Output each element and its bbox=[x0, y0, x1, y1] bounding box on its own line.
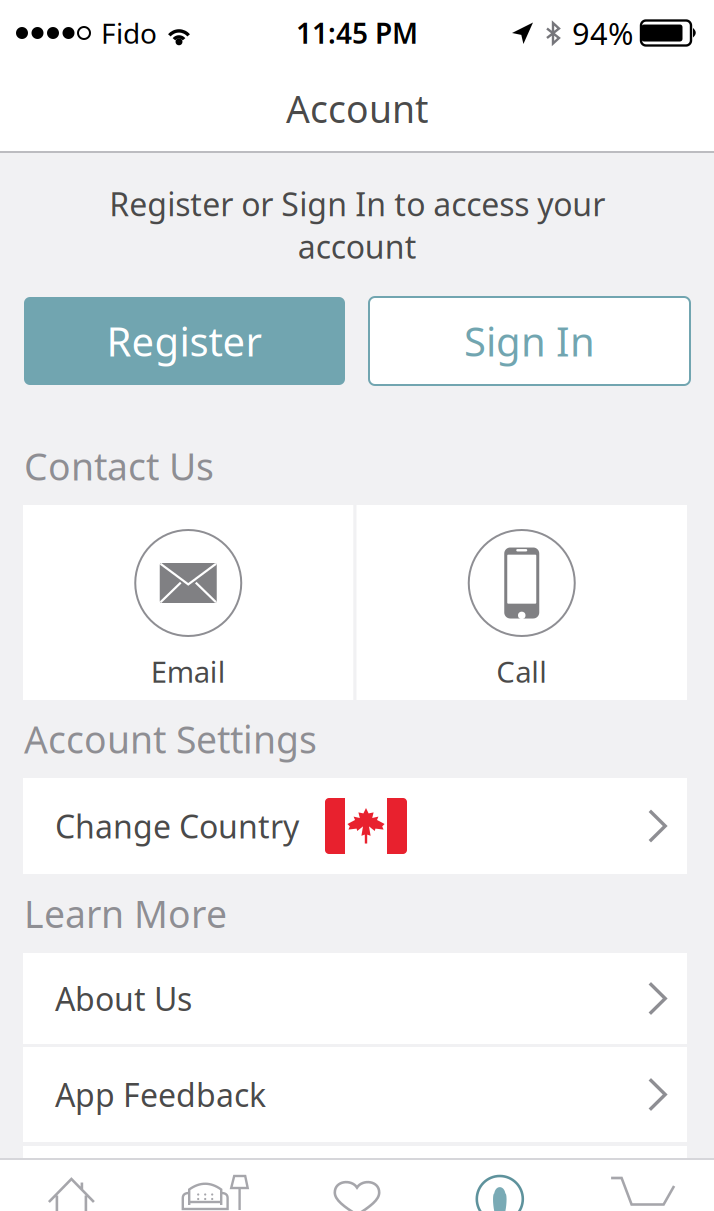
staticText: Learn More bbox=[24, 889, 227, 938]
button[interactable]: Shop bbox=[143, 1160, 286, 1211]
staticText: Account bbox=[286, 84, 428, 133]
staticText: Register or Sign In to access your accou… bbox=[109, 182, 605, 267]
staticText: Fido bbox=[101, 14, 157, 52]
button[interactable]: Email bbox=[23, 505, 353, 700]
staticText: Call bbox=[496, 652, 547, 691]
button[interactable]: Sign In bbox=[369, 297, 690, 385]
button[interactable]: Home bbox=[0, 1160, 143, 1211]
staticText: 94% bbox=[572, 13, 633, 53]
button[interactable]: About Us bbox=[23, 953, 687, 1044]
button[interactable]: Register bbox=[24, 297, 345, 385]
staticText: About Us bbox=[55, 977, 192, 1020]
button[interactable]: Cart bbox=[571, 1160, 714, 1211]
button[interactable]: Account bbox=[428, 1160, 571, 1211]
staticText: Register bbox=[106, 314, 262, 367]
button[interactable]: Favourites bbox=[286, 1160, 428, 1211]
staticText: App Feedback bbox=[55, 1073, 266, 1116]
button[interactable]: Call bbox=[356, 505, 687, 700]
staticText: Change Country bbox=[55, 805, 299, 847]
staticText: Email bbox=[151, 652, 226, 691]
staticText: Account Settings bbox=[24, 714, 317, 764]
staticText: Contact Us bbox=[24, 441, 214, 491]
staticText: 11:45 PM bbox=[296, 14, 418, 52]
button[interactable]: Change Country bbox=[23, 778, 687, 874]
staticText: Sign In bbox=[464, 314, 595, 367]
button[interactable]: App Feedback bbox=[23, 1047, 687, 1142]
